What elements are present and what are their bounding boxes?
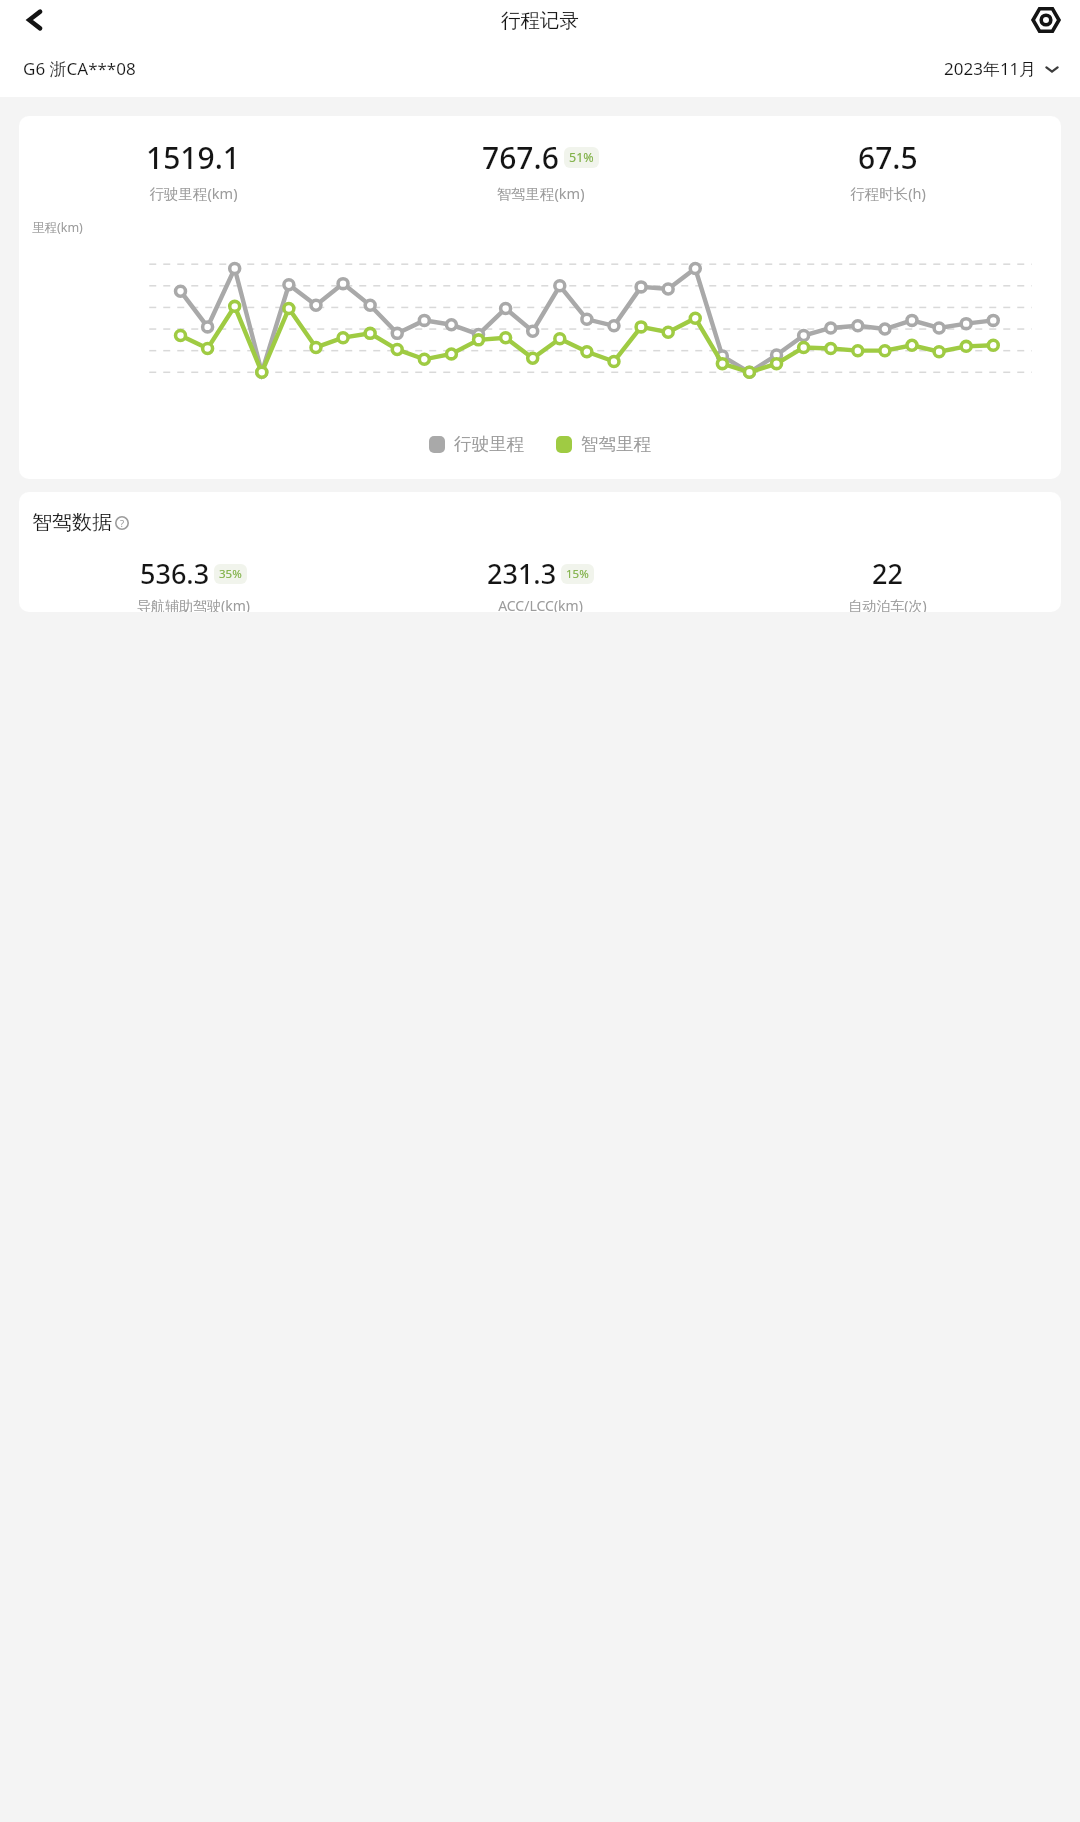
button[interactable]: 67.5	[714, 137, 1061, 203]
staticText: 智驾数据	[32, 510, 112, 535]
staticText: 智驾里程(km)	[496, 183, 585, 203]
button[interactable]: 行驶里程	[429, 433, 524, 455]
staticText: 22	[872, 555, 903, 592]
staticText: 行程记录	[501, 8, 579, 33]
button[interactable]: 536.3	[19, 555, 367, 612]
button[interactable]: 2023年11月	[944, 57, 1060, 80]
staticText: 35%	[219, 566, 242, 582]
button[interactable]: 231.3	[367, 555, 714, 612]
staticText: ?	[120, 517, 125, 530]
staticText: 767.6	[482, 137, 559, 178]
staticText: 行驶里程(km)	[149, 183, 238, 203]
staticText: 231.3	[487, 555, 557, 592]
staticText: 行驶里程	[454, 433, 524, 455]
staticText: 里程(km)	[32, 219, 83, 236]
staticText: 2023年11月	[944, 57, 1037, 80]
button[interactable]: 22	[714, 555, 1061, 612]
button[interactable]: Back	[12, 1, 50, 39]
button[interactable]: 智驾数据	[32, 510, 129, 535]
staticText: 1519.1	[146, 137, 240, 178]
staticText: ACC/LCC(km)	[498, 596, 583, 612]
staticText: 智驾里程	[581, 433, 651, 455]
staticText: 67.5	[858, 137, 918, 178]
staticText: 导航辅助驾驶(km)	[137, 596, 250, 612]
staticText: 51%	[569, 149, 594, 166]
staticText: G6 浙CA***08	[23, 57, 136, 80]
staticText: 15%	[566, 566, 589, 582]
staticText: 536.3	[140, 555, 210, 592]
button[interactable]: 767.6	[367, 137, 714, 203]
staticText: 行程时长(h)	[850, 183, 926, 203]
button[interactable]: 1519.1	[19, 137, 367, 203]
staticText: 自动泊车(次)	[848, 596, 927, 612]
button[interactable]: 智驾里程	[556, 433, 651, 455]
button[interactable]: Settings	[1028, 2, 1064, 38]
